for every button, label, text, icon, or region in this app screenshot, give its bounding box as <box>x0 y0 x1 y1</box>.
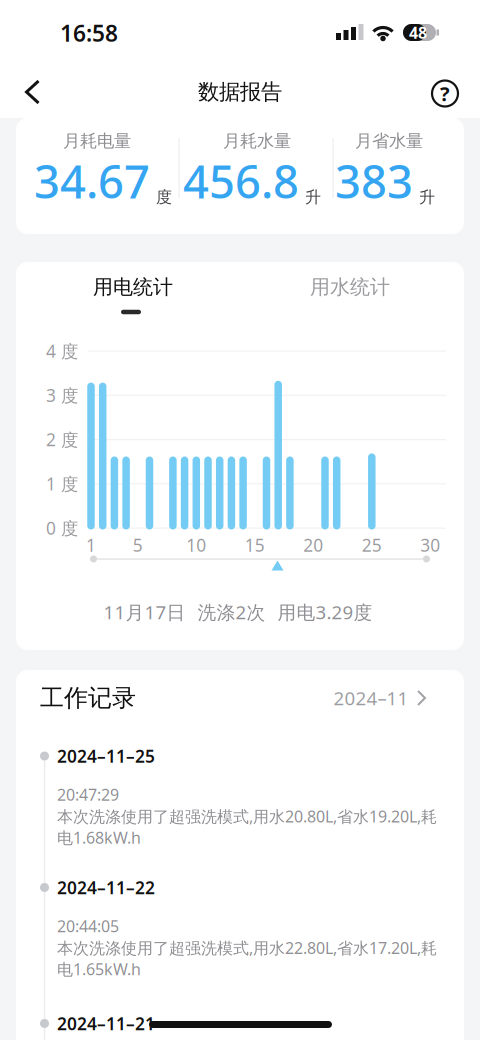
staticText: 2024–11–21 <box>57 1012 155 1035</box>
staticText: 16:58 <box>60 18 118 48</box>
button[interactable]: ? <box>423 71 467 115</box>
staticText: 2 度 <box>46 428 78 451</box>
staticText: 月耗电量 <box>63 130 131 152</box>
staticText: 用水统计 <box>310 275 390 299</box>
staticText: 月耗水量 <box>223 130 291 152</box>
staticText: 数据报告 <box>198 79 282 105</box>
staticText: 用电统计 <box>93 275 173 299</box>
staticText: 2024–11–22 <box>57 876 155 899</box>
staticText: ? <box>440 80 450 107</box>
button[interactable]: 2024–11 <box>336 676 436 720</box>
staticText: 383 <box>335 151 413 211</box>
staticText: 20:44:05 <box>57 915 119 937</box>
staticText: 4 度 <box>46 339 78 362</box>
staticText: 本次洗涤使用了超强洗模式,用水22.80L,省水17.20L,耗电1.65kW.… <box>57 937 437 980</box>
staticText: 2024–11–25 <box>57 744 155 767</box>
staticText: 度 <box>156 187 172 207</box>
staticText: 48 <box>409 22 427 43</box>
staticText: 20:47:29 <box>57 784 119 805</box>
staticText: 月省水量 <box>355 130 423 152</box>
staticText: 15 <box>245 533 265 556</box>
staticText: 456.8 <box>183 151 299 211</box>
staticText: 升 <box>305 187 321 207</box>
staticText: 1 度 <box>46 472 78 495</box>
staticText: 20 <box>303 533 323 556</box>
staticText: 工作记录 <box>40 683 136 713</box>
staticText: 30 <box>420 533 440 556</box>
staticText: 5 <box>133 533 143 556</box>
staticText: 0 度 <box>46 516 78 539</box>
button[interactable] <box>10 70 54 114</box>
button[interactable]: 用水统计 <box>240 262 464 322</box>
staticText: 升 <box>419 187 435 207</box>
staticText: 10 <box>186 533 206 556</box>
staticText: 本次洗涤使用了超强洗模式,用水20.80L,省水19.20L,耗电1.68kW.… <box>57 806 437 848</box>
staticText: 25 <box>362 533 382 556</box>
staticText: 1 <box>86 533 96 556</box>
button[interactable]: 用电统计 <box>16 262 240 322</box>
staticText: 34.67 <box>34 151 150 211</box>
staticText: 11月17日 洗涤2次 用电3.29度 <box>103 600 372 624</box>
staticText: 2024–11 <box>333 686 408 710</box>
staticText: 3 度 <box>46 384 78 407</box>
